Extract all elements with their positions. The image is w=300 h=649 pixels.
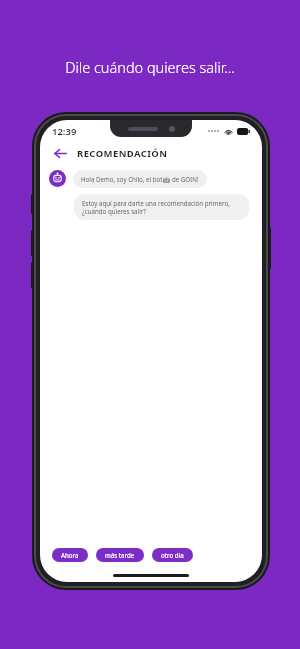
button[interactable]: Chilo bot avatar [49,170,66,187]
button[interactable]: Hola Demo, soy Chilo, el bot🤖 de GOIN! [73,170,207,188]
staticText: más tarde [105,551,135,559]
button[interactable]: Ahora [52,548,88,562]
staticText: Hola Demo, soy Chilo, el bot🤖 de GOIN! [81,175,199,183]
staticText: Ahora [61,551,79,559]
staticText: 12:39 [52,125,77,138]
button[interactable]: Back [50,143,70,163]
staticText: Dile cuándo quieres salir... [0,57,300,77]
staticText: otro día [161,551,184,559]
button[interactable]: Estoy aquí para darte una recomendación … [74,194,249,220]
button[interactable]: otro día [152,548,193,562]
staticText: Estoy aquí para darte una recomendación … [82,199,241,215]
button[interactable]: más tarde [96,548,144,562]
staticText: RECOMENDACIÓN [77,147,168,160]
